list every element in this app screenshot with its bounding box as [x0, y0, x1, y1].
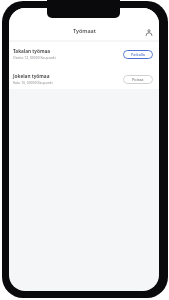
button[interactable]: Jokelan työmaa: [9, 67, 159, 90]
staticText: Jokelan työmaa: [13, 73, 50, 79]
staticText: Osoite 12, 00000 Kaupunki: [13, 55, 56, 60]
staticText: Työmaat: [73, 27, 96, 34]
staticText: Poissa: [132, 77, 144, 82]
staticText: Paikalla: [131, 52, 146, 57]
button[interactable]: Poissa: [123, 75, 153, 84]
staticText: Katu 16, 00000 Kaupunki: [13, 80, 53, 85]
button[interactable]: Takalan työmaa: [9, 42, 159, 65]
staticText: Takalan työmaa: [13, 48, 51, 54]
button[interactable]: Paikalla: [123, 50, 153, 59]
button[interactable]: Account: [145, 29, 153, 37]
